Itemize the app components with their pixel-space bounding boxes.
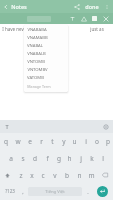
staticText: VNTOMBV xyxy=(27,67,48,73)
button[interactable]: VNABABA xyxy=(24,26,68,34)
button[interactable]: d xyxy=(29,150,41,167)
button[interactable]: h xyxy=(64,150,75,167)
staticText: x xyxy=(30,171,34,180)
button[interactable]: y xyxy=(58,133,69,150)
staticText: , xyxy=(22,188,24,195)
button[interactable]: Share xyxy=(70,0,83,13)
button[interactable]: Backspace xyxy=(97,167,113,183)
button[interactable]: o xyxy=(91,133,102,150)
button[interactable]: u xyxy=(69,133,80,150)
staticText: g xyxy=(57,154,61,163)
staticText: z xyxy=(19,171,23,180)
staticText: h xyxy=(67,154,72,163)
staticText: just as xyxy=(90,26,104,32)
staticText: . xyxy=(87,188,89,195)
staticText: l xyxy=(102,154,104,163)
button[interactable]: x xyxy=(26,167,37,183)
staticText: p xyxy=(106,137,110,146)
staticText: t xyxy=(51,137,54,146)
staticText: n xyxy=(77,171,82,180)
button[interactable]: r xyxy=(36,133,47,150)
staticText: d xyxy=(33,154,37,163)
staticText: o xyxy=(95,137,99,146)
button[interactable]: f xyxy=(41,150,53,167)
button[interactable]: Colour xyxy=(89,13,100,24)
staticText: i xyxy=(85,137,87,146)
button[interactable]: VNAMABB xyxy=(24,34,68,42)
button[interactable]: q xyxy=(0,133,12,150)
staticText: s xyxy=(21,154,25,163)
button[interactable]: w xyxy=(12,133,24,150)
staticText: T xyxy=(5,123,9,130)
other: Back xyxy=(3,4,9,10)
button[interactable]: m xyxy=(85,167,97,183)
button[interactable]: Alert xyxy=(78,13,89,24)
button[interactable]: i xyxy=(80,133,91,150)
button[interactable]: v xyxy=(49,167,61,183)
button[interactable]: a xyxy=(5,150,17,167)
staticText: VNAMABB xyxy=(27,35,48,41)
button[interactable]: VATOMB xyxy=(24,74,68,82)
button[interactable]: VNABALB xyxy=(24,50,68,58)
staticText: m xyxy=(88,171,95,180)
button[interactable]: b xyxy=(61,167,73,183)
staticText: VNABALB xyxy=(27,51,46,57)
button[interactable]: p xyxy=(102,133,113,150)
staticText: VNTOMB xyxy=(27,59,45,65)
button[interactable]: l xyxy=(97,150,108,167)
button[interactable]: , xyxy=(18,183,28,199)
button[interactable]: g xyxy=(53,150,64,167)
staticText: j xyxy=(80,154,82,163)
staticText: VNABABA xyxy=(27,27,47,33)
staticText: I have nev xyxy=(2,26,24,32)
staticText: done xyxy=(85,3,99,10)
button[interactable]: Undo xyxy=(67,13,78,24)
button[interactable]: done xyxy=(83,0,101,13)
staticText: a xyxy=(9,154,13,163)
button[interactable]: n xyxy=(73,167,85,183)
staticText: f xyxy=(46,154,49,163)
button[interactable]: ?123 xyxy=(1,183,18,199)
staticText: y xyxy=(62,137,66,146)
button[interactable] xyxy=(24,13,54,24)
button[interactable]: VNABAL xyxy=(24,42,68,50)
staticText: q xyxy=(4,137,8,146)
staticText: w xyxy=(15,137,21,146)
staticText: e xyxy=(28,137,32,146)
button[interactable]: t xyxy=(47,133,58,150)
button[interactable]: k xyxy=(86,150,97,167)
button[interactable]: c xyxy=(37,167,49,183)
staticText: k xyxy=(90,154,94,163)
button[interactable]: More options xyxy=(101,1,112,12)
button[interactable]: Manage Term xyxy=(24,83,68,91)
button[interactable]: j xyxy=(75,150,86,167)
staticText: b xyxy=(65,171,69,180)
staticText: u xyxy=(72,137,77,146)
button[interactable]: e xyxy=(24,133,36,150)
staticText: ?123 xyxy=(5,188,15,194)
staticText: v xyxy=(53,171,57,180)
button[interactable]: Tiếng Việt xyxy=(28,187,82,196)
button[interactable]: VNTOMBV xyxy=(24,66,68,74)
button[interactable]: Back xyxy=(0,0,31,13)
staticText: Tiếng Việt xyxy=(45,189,65,195)
button[interactable]: Keyboard settings xyxy=(99,120,112,133)
staticText: VATOMB xyxy=(27,75,44,81)
button[interactable]: Enter xyxy=(97,186,108,197)
button[interactable]: Text tools xyxy=(0,120,13,133)
staticText: c xyxy=(41,171,45,180)
button[interactable]: s xyxy=(17,150,29,167)
staticText: VNABAL xyxy=(27,43,43,49)
staticText: Manage Term xyxy=(27,84,51,89)
button[interactable]: Shift xyxy=(0,167,15,183)
staticText: r xyxy=(40,137,43,146)
button[interactable]: z xyxy=(15,167,26,183)
button[interactable]: VNTOMB xyxy=(24,58,68,66)
button[interactable]: Close xyxy=(100,13,112,24)
staticText: Notes xyxy=(11,3,27,10)
